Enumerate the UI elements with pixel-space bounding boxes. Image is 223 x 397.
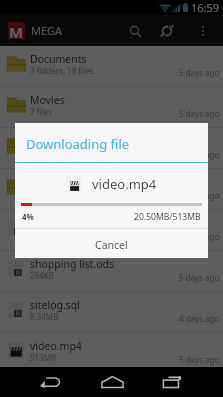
button[interactable]: Cancel — [15, 230, 208, 259]
staticText: Music — [30, 134, 59, 148]
button[interactable]: Home — [84, 367, 140, 397]
staticText: 5 days ago — [179, 354, 220, 365]
staticText: Cancel — [95, 238, 128, 252]
staticText: 8.34MB — [30, 311, 59, 322]
staticText: 5 days ago — [179, 272, 220, 283]
button[interactable]: Search — [120, 16, 151, 46]
staticText: sitelog.sql — [30, 298, 80, 312]
staticText: video.mp4 — [92, 175, 157, 193]
button[interactable]: sitelog.sql — [0, 292, 223, 332]
staticText: 284KB — [30, 270, 54, 281]
staticText: 5 days ago — [179, 149, 220, 160]
staticText: 5 days ago — [179, 108, 220, 119]
staticText: 20.50MB/513MB — [134, 211, 201, 223]
button[interactable]: More options — [183, 16, 223, 46]
staticText: 12 files — [30, 147, 57, 158]
staticText: Downloading file — [26, 135, 130, 153]
staticText: shopping list.ods — [30, 257, 115, 271]
button[interactable]: notes.txt — [0, 210, 223, 250]
button[interactable]: video.mp4 — [0, 333, 223, 373]
staticText: 4 days ago — [179, 313, 220, 324]
button[interactable]: Movies — [0, 87, 223, 127]
staticText: video.mp4 — [30, 339, 82, 353]
staticText: 5 days ago — [179, 190, 220, 201]
staticText: 7 files — [30, 106, 52, 117]
staticText: 5 days ago — [179, 231, 220, 242]
staticText: 3 folders, 18 files — [30, 65, 94, 76]
staticText: 5 days ago — [179, 67, 220, 78]
button[interactable]: Back — [22, 367, 78, 397]
staticText: Movies — [30, 93, 65, 107]
staticText: 16:59 — [191, 0, 220, 15]
button[interactable]: Pictures — [0, 169, 223, 209]
button[interactable]: Recent apps — [144, 367, 200, 397]
staticText: 513MB — [30, 352, 57, 363]
button[interactable]: Documents — [0, 46, 223, 86]
staticText: Documents — [30, 52, 87, 66]
staticText: notes.txt — [30, 216, 74, 230]
staticText: 4% — [22, 211, 34, 222]
staticText: M — [9, 22, 24, 39]
button[interactable]: Refresh — [151, 16, 183, 46]
staticText: MEGA — [31, 23, 63, 38]
button[interactable]: shopping list.ods — [0, 251, 223, 291]
button[interactable]: Music — [0, 128, 223, 168]
